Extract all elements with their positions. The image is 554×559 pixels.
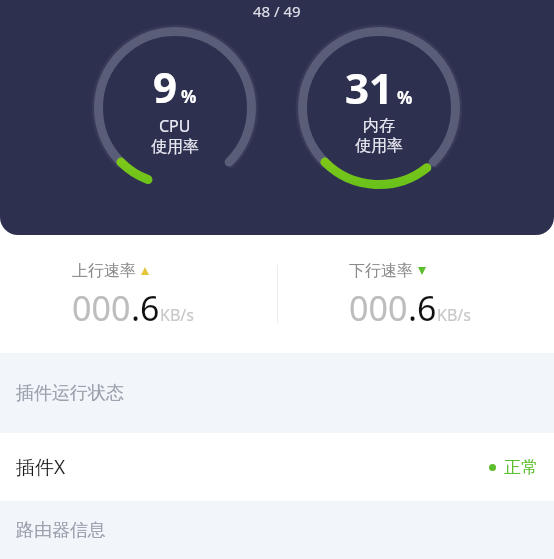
button[interactable]: 下行速率: [277, 235, 554, 353]
staticText: CPU: [159, 115, 191, 137]
staticText: 9: [153, 58, 178, 115]
staticText: KB/s: [437, 304, 471, 326]
staticText: KB/s: [160, 304, 194, 326]
staticText: 插件运行状态: [16, 382, 124, 405]
staticText: 000: [349, 285, 408, 331]
staticText: 000: [72, 285, 131, 331]
staticText: %: [397, 86, 413, 109]
staticText: 路由器信息: [16, 519, 106, 542]
staticText: 31: [345, 59, 394, 116]
staticText: 上行速率: [72, 261, 136, 281]
staticText: %: [181, 85, 197, 108]
staticText: .6: [408, 285, 437, 331]
button[interactable]: 插件X: [0, 433, 554, 501]
staticText: 使用率: [355, 136, 403, 156]
staticText: .6: [131, 285, 160, 331]
staticText: 插件X: [16, 454, 66, 480]
button[interactable]: 上行速率: [0, 235, 277, 353]
staticText: 正常: [504, 457, 538, 478]
staticText: 下行速率: [349, 261, 413, 281]
staticText: 内存: [363, 116, 395, 136]
staticText: 使用率: [151, 137, 199, 157]
staticText: 48 / 49: [253, 1, 301, 21]
